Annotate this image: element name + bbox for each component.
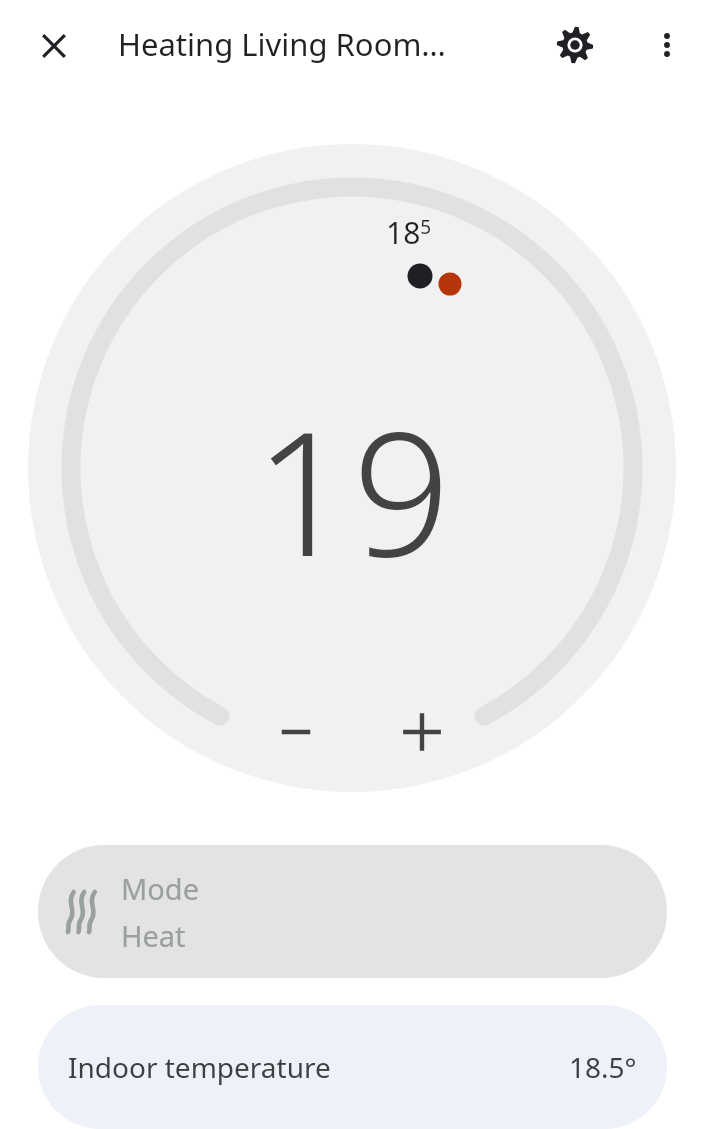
staticText: Mode xyxy=(121,869,200,908)
button[interactable]: Mode xyxy=(38,845,667,978)
staticText: Indoor temperature xyxy=(68,1048,331,1086)
button[interactable]: Indoor temperature xyxy=(38,1005,667,1129)
button[interactable]: Close xyxy=(26,18,82,74)
staticText: 185 xyxy=(386,212,432,253)
button[interactable]: Settings xyxy=(547,17,603,73)
button[interactable]: Decrease temperature xyxy=(252,688,340,776)
staticText: Heating Living Room… xyxy=(118,23,446,65)
staticText: Heat xyxy=(121,916,186,955)
staticText: 18.5° xyxy=(569,1048,637,1086)
button[interactable]: Increase temperature xyxy=(378,688,466,776)
button[interactable]: More options xyxy=(639,17,695,73)
staticText: 19 xyxy=(254,372,451,606)
